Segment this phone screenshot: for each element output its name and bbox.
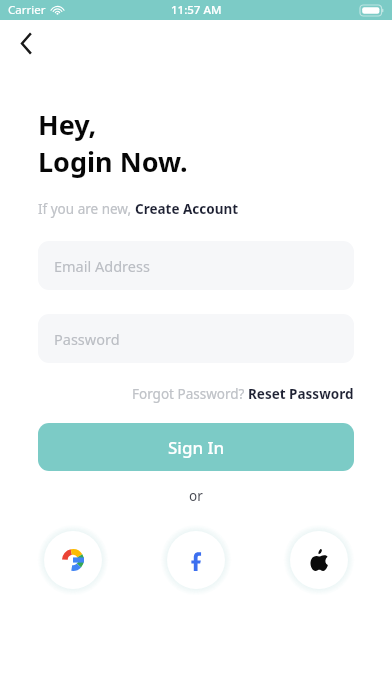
button[interactable]: Sign In — [38, 423, 354, 471]
staticText: or — [189, 487, 203, 505]
staticText: Carrier — [8, 2, 46, 18]
button[interactable]: Back — [6, 23, 46, 63]
button[interactable]: Sign in with Apple — [290, 531, 348, 589]
staticText: Reset Password — [248, 385, 354, 403]
button[interactable]: Password — [38, 314, 354, 363]
staticText: Login Now. — [38, 143, 188, 180]
staticText: 11:57 AM — [171, 2, 222, 18]
staticText: Password — [54, 329, 120, 349]
button[interactable]: Sign in with Google — [44, 531, 102, 589]
button[interactable]: Create Account — [135, 200, 239, 218]
staticText: Forgot Password? — [132, 385, 248, 403]
staticText: Hey, — [38, 106, 97, 143]
staticText: Create Account — [135, 200, 239, 218]
button[interactable]: Reset Password — [248, 385, 354, 403]
staticText: Email Address — [54, 256, 150, 276]
button[interactable]: Email Address — [38, 241, 354, 290]
staticText: Sign In — [168, 436, 225, 459]
staticText: If you are new, — [38, 200, 135, 218]
button[interactable]: Sign in with Facebook — [167, 531, 225, 589]
